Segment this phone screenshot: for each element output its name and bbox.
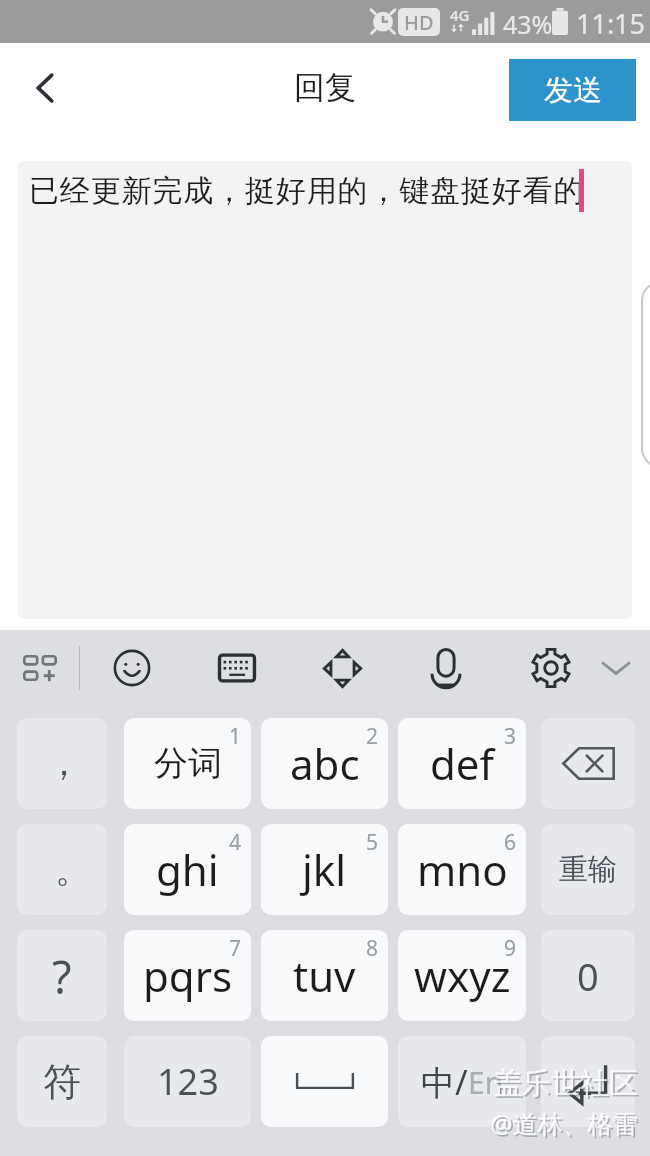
button[interactable]: Move cursor (310, 636, 374, 700)
button[interactable]: 发送 (509, 59, 636, 121)
button[interactable]: space (261, 1036, 388, 1127)
button[interactable]: Add sticker (8, 636, 72, 700)
staticText: 9 (504, 934, 517, 963)
button[interactable]: wxyz (398, 930, 526, 1021)
staticText: ghi (156, 841, 219, 898)
button[interactable]: enter (541, 1036, 635, 1127)
button[interactable]: 重输 (541, 824, 635, 915)
staticText: @道林、格雷 (492, 1108, 640, 1142)
staticText: mno (417, 841, 508, 898)
staticText: ? (52, 946, 72, 1007)
button[interactable]: tuv (261, 930, 388, 1021)
button[interactable]: Voice input (414, 636, 478, 700)
button[interactable]: Emoji (100, 636, 164, 700)
staticText: 盖乐世社区 (493, 1065, 638, 1102)
staticText: 2 (366, 722, 379, 751)
staticText: 发送 (544, 72, 602, 109)
staticText: 回复 (294, 68, 356, 107)
staticText: 分词 (154, 742, 222, 785)
staticText: def (430, 735, 494, 792)
button[interactable]: def (398, 718, 526, 809)
button[interactable]: ， (17, 718, 107, 809)
staticText: 3 (504, 722, 517, 751)
staticText: 8 (366, 934, 379, 963)
button[interactable]: ghi (124, 824, 251, 915)
button[interactable]: 分词 (124, 718, 251, 809)
button[interactable]: 中/ (398, 1036, 526, 1127)
staticText: jkl (302, 841, 347, 898)
staticText: 盖乐世社区 (495, 1067, 640, 1104)
button[interactable]: mno (398, 824, 526, 915)
button[interactable]: pqrs (124, 930, 251, 1021)
staticText: pqrs (143, 947, 233, 1004)
staticText: 。 (55, 847, 91, 892)
staticText: 中/ (421, 1059, 468, 1105)
button[interactable]: Keyboard (205, 636, 269, 700)
button[interactable]: Settings (519, 636, 583, 700)
staticText: 0 (577, 950, 599, 1002)
staticText: 符 (43, 1058, 81, 1106)
button[interactable]: 。 (17, 824, 107, 915)
staticText: 123 (157, 1057, 219, 1106)
button[interactable]: jkl (261, 824, 388, 915)
staticText: @道林、格雷 (490, 1106, 638, 1140)
button[interactable]: 123 (124, 1036, 251, 1127)
staticText: 1 (229, 722, 242, 751)
button[interactable]: 已经更新完成，挺好用的，键盘挺好看的 (18, 161, 632, 619)
staticText: ， (46, 740, 82, 785)
staticText: HD (404, 9, 434, 36)
staticText: 4G (450, 5, 470, 25)
button[interactable]: 符 (17, 1036, 107, 1127)
staticText: 7 (229, 934, 242, 963)
staticText: 6 (504, 828, 517, 857)
button[interactable]: Back (6, 49, 84, 127)
staticText: En (468, 1062, 504, 1103)
button[interactable]: ? (17, 930, 107, 1021)
button[interactable]: abc (261, 718, 388, 809)
staticText: 4 (229, 828, 242, 857)
staticText: 已经更新完成，挺好用的，键盘挺好看的 (29, 172, 585, 210)
staticText: 重输 (559, 851, 617, 888)
button[interactable]: del (541, 718, 635, 809)
staticText: wxyz (414, 947, 511, 1004)
staticText: tuv (293, 947, 356, 1004)
button[interactable]: Hide keyboard (586, 638, 646, 698)
staticText: abc (290, 735, 360, 792)
staticText: 43% (503, 7, 553, 41)
staticText: 11:15 (576, 5, 646, 42)
staticText: 5 (366, 828, 379, 857)
button[interactable]: 0 (541, 930, 635, 1021)
